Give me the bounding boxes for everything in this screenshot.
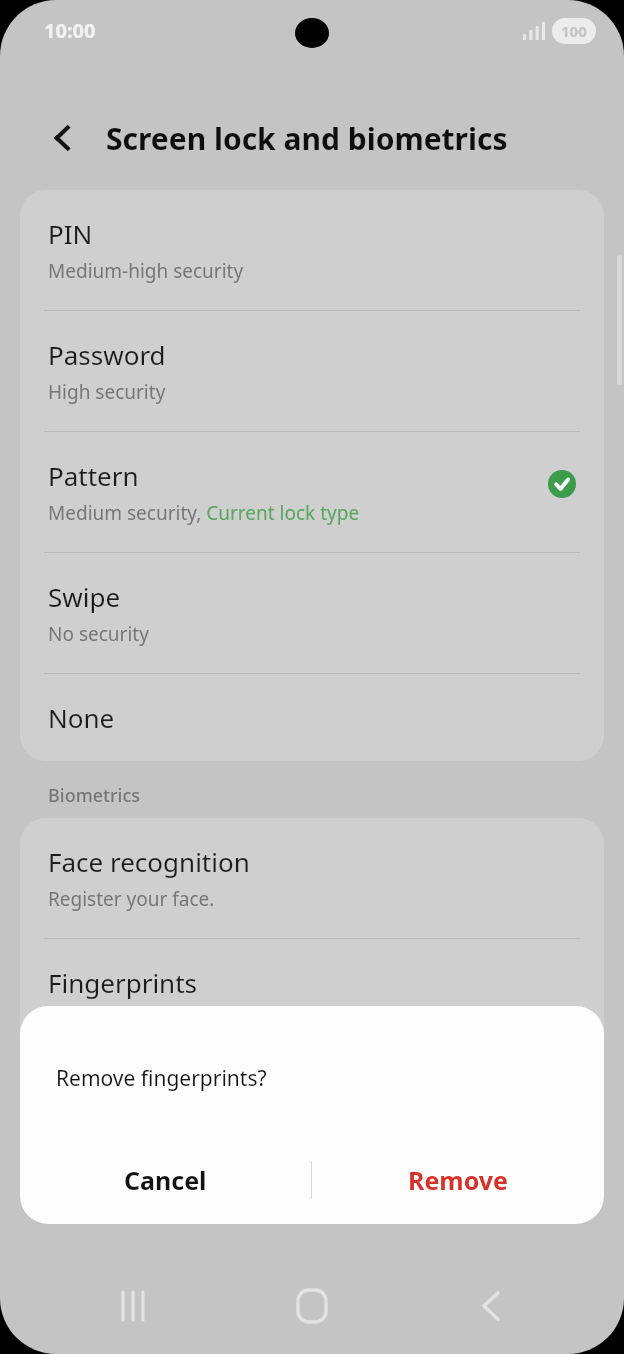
button[interactable]: Back [446,1261,536,1351]
button[interactable]: Remove [312,1136,604,1224]
staticText: PIN [48,216,93,251]
staticText: Pattern [48,458,139,493]
staticText: High security [48,379,166,405]
staticText: Screen lock and biometrics [106,118,508,159]
staticText: Face recognition [48,844,250,879]
button[interactable]: Pattern [20,432,604,552]
button[interactable]: Recent apps [89,1261,179,1351]
button[interactable]: Cancel [20,1136,311,1224]
staticText: None [48,700,115,735]
staticText: Fingerprints [48,965,198,1000]
button[interactable]: Swipe [20,553,604,673]
staticText: Remove fingerprints? [56,1064,267,1093]
staticText: Medium-high security [48,258,244,284]
button[interactable]: Fingerprints [20,939,604,1059]
button[interactable]: Face recognition [20,818,604,938]
button[interactable]: PIN [20,190,604,310]
button[interactable]: Back [35,110,91,166]
staticText: 100 [561,21,587,41]
staticText: No security [48,621,149,647]
staticText: Swipe [48,579,121,614]
staticText: Remove [408,1163,509,1197]
staticText: Biometrics [48,783,140,808]
button[interactable]: None [20,674,604,761]
staticText: Medium security, Current lock type [48,500,360,526]
button[interactable]: Password [20,311,604,431]
staticText: 10:00 [44,17,96,44]
button[interactable]: Home [267,1261,357,1351]
staticText: Register your face. [48,886,215,912]
staticText: Cancel [124,1163,207,1197]
staticText: Password [48,337,166,372]
